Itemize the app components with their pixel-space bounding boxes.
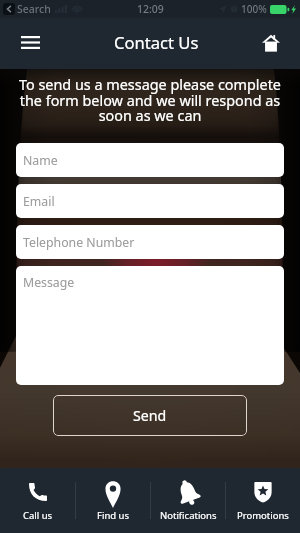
staticText: Call us — [23, 509, 53, 522]
button[interactable]: Notifications — [151, 468, 225, 533]
staticText: Promotions — [237, 509, 289, 522]
staticText: 12:09 — [137, 2, 164, 16]
button[interactable]: Name — [16, 143, 284, 177]
button[interactable]: Menu — [9, 23, 51, 65]
button[interactable]: Find us — [76, 468, 150, 533]
button[interactable]: Call us — [0, 468, 75, 533]
staticText: Contact Us — [114, 31, 199, 54]
staticText: To send us a message please complete the… — [10, 75, 290, 125]
staticText: Send — [133, 406, 167, 425]
staticText: Message — [23, 274, 75, 291]
staticText: Email — [23, 193, 55, 210]
staticText: Notifications — [160, 509, 217, 522]
button[interactable]: Promotions — [226, 468, 300, 533]
button[interactable]: Home — [252, 23, 294, 65]
button[interactable]: Telephone Number — [16, 225, 284, 259]
button[interactable]: Message — [16, 266, 284, 385]
staticText: 100% — [241, 2, 267, 16]
button[interactable]: Email — [16, 184, 284, 218]
staticText: Name — [23, 152, 58, 169]
staticText: Find us — [97, 509, 129, 522]
staticText: Telephone Number — [23, 234, 135, 251]
button[interactable]: Send — [53, 395, 247, 436]
staticText: Search — [17, 2, 51, 16]
